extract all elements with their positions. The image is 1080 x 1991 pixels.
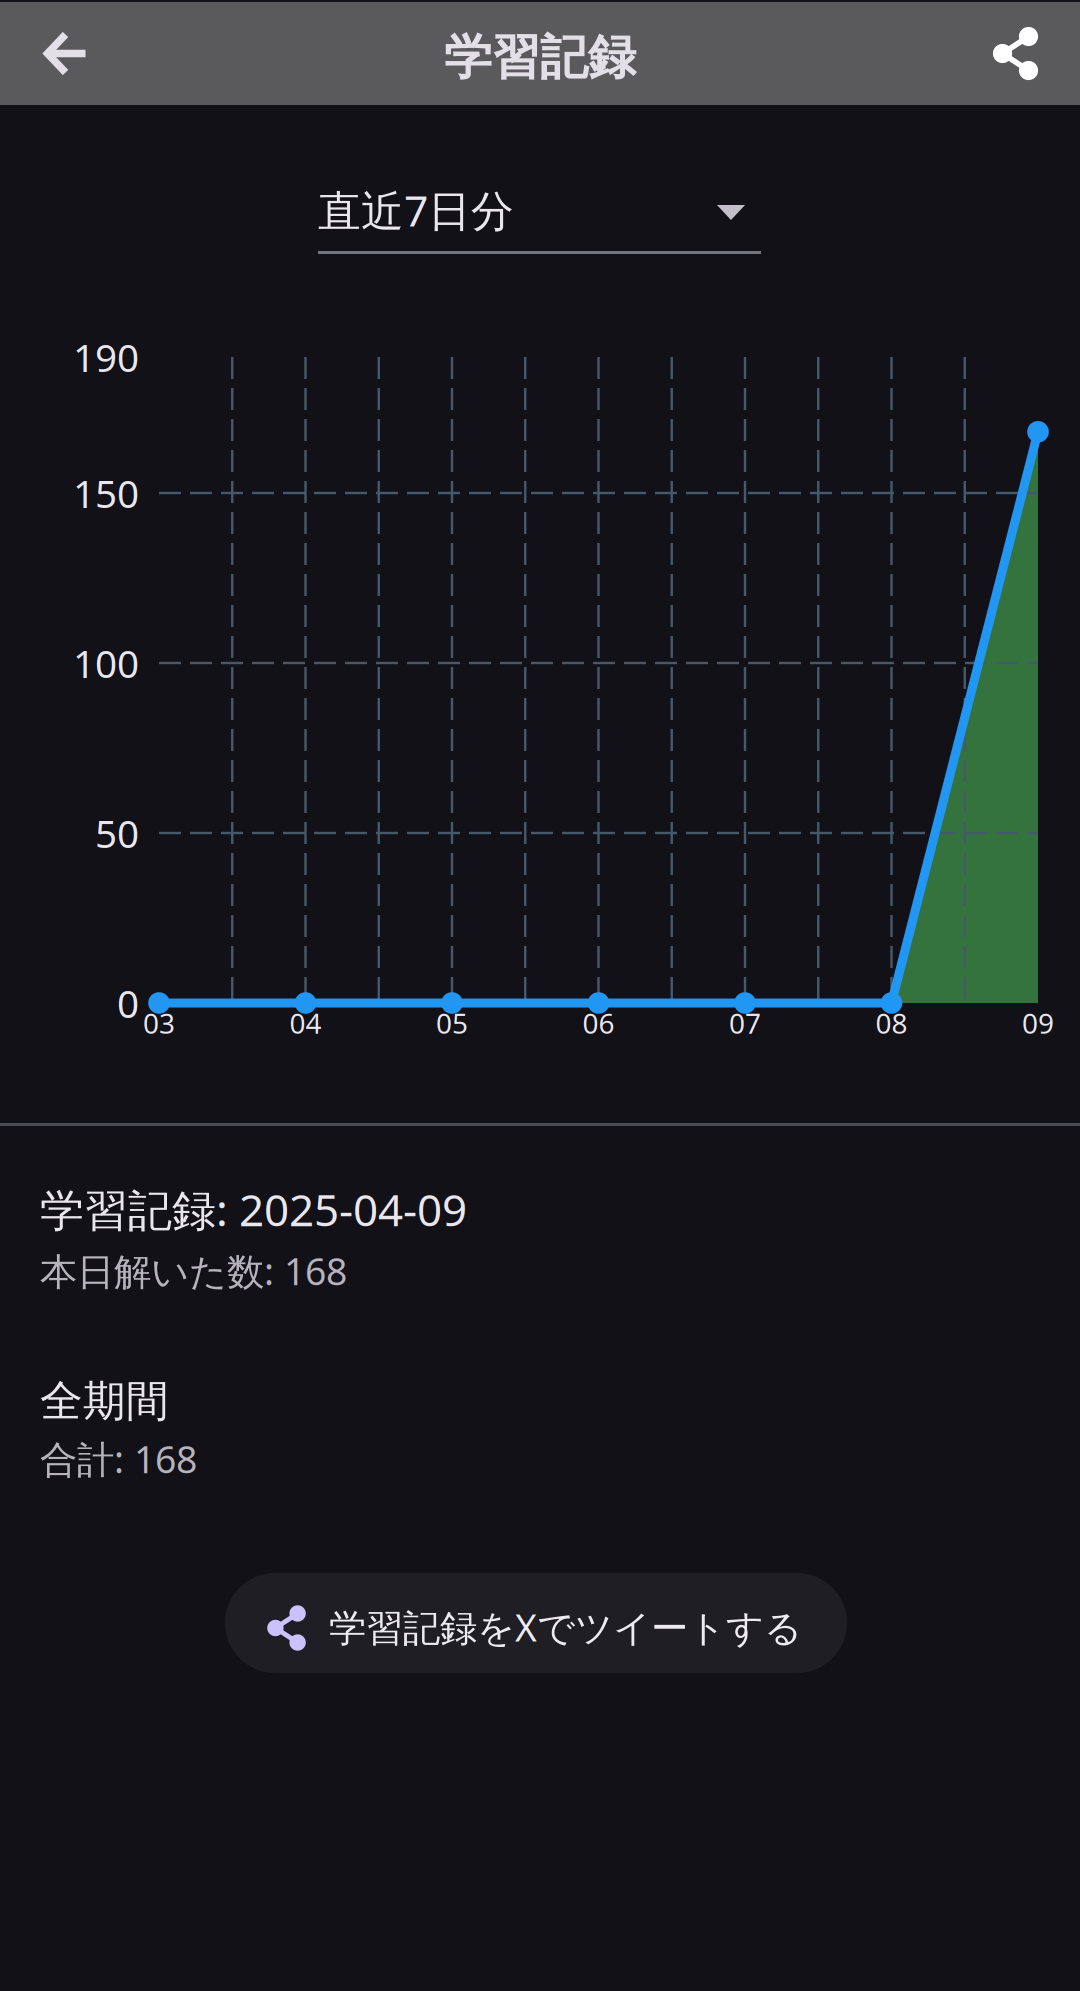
- staticText: 03: [143, 1004, 175, 1042]
- button[interactable]: Share: [963, 2, 1068, 105]
- staticText: 09: [1022, 1004, 1054, 1042]
- staticText: 06: [582, 1004, 614, 1042]
- staticText: 合計: 168: [40, 1434, 197, 1484]
- staticText: 本日解いた数: 168: [40, 1246, 347, 1296]
- staticText: 学習記録: 2025-04-09: [40, 1180, 467, 1238]
- button[interactable]: 学習記録をXでツイートする: [225, 1573, 847, 1673]
- staticText: 07: [729, 1004, 761, 1042]
- staticText: 学習記録をXでツイートする: [329, 1602, 802, 1652]
- staticText: 05: [436, 1004, 468, 1042]
- button[interactable]: Back: [14, 2, 119, 105]
- staticText: 190: [73, 331, 139, 383]
- staticText: 150: [73, 467, 139, 519]
- staticText: 全期間: [40, 1375, 169, 1427]
- staticText: 50: [95, 807, 139, 859]
- staticText: 0: [117, 977, 139, 1029]
- staticText: 08: [875, 1004, 907, 1042]
- staticText: 100: [73, 637, 139, 689]
- staticText: 04: [289, 1004, 321, 1042]
- button[interactable]: 直近7日分: [318, 174, 761, 274]
- staticText: 学習記録: [444, 28, 636, 87]
- staticText: 直近7日分: [318, 182, 514, 238]
